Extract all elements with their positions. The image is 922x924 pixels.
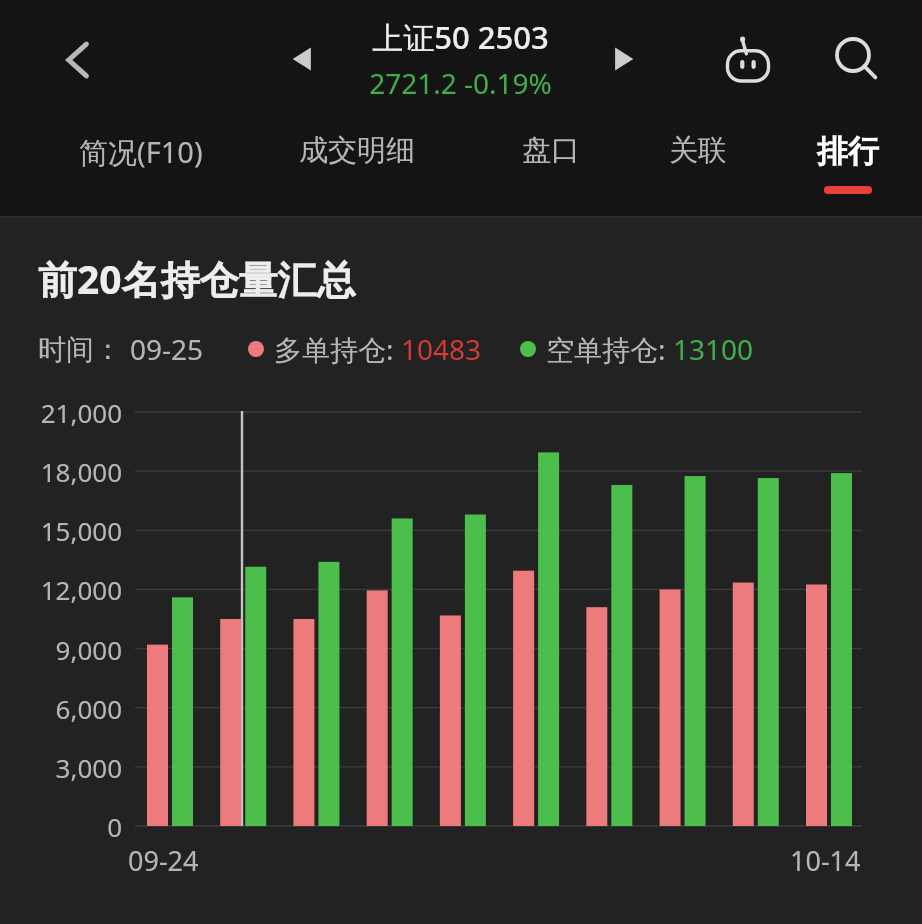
staticText: 盘口 <box>522 132 580 169</box>
staticText: 简况(F10) <box>79 132 203 172</box>
button[interactable]: Next contract <box>596 30 654 88</box>
staticText: 0 <box>0 809 122 844</box>
staticText: 09-25 <box>130 330 204 368</box>
staticText: 9,000 <box>0 632 122 667</box>
staticText: 时间： <box>38 332 122 367</box>
staticText: 关联 <box>669 132 727 169</box>
staticText: 13100 <box>673 330 754 368</box>
staticText: 21,000 <box>0 395 122 430</box>
staticText: 成交明细 <box>299 132 415 169</box>
button[interactable]: Previous contract <box>272 30 330 88</box>
staticText: 2721.2 -0.19% <box>369 64 552 102</box>
staticText: 12,000 <box>0 572 122 607</box>
staticText: 15,000 <box>0 513 122 548</box>
button[interactable]: 排行 <box>797 118 899 216</box>
staticText: 前20名持仓量汇总 <box>38 252 356 305</box>
button[interactable]: 关联 <box>647 118 749 216</box>
staticText: 空单持仓: <box>546 330 673 368</box>
button[interactable]: Back <box>42 24 114 96</box>
staticText: 10-14 <box>790 842 861 879</box>
staticText: 09-24 <box>128 842 199 879</box>
button[interactable]: Search <box>820 24 892 96</box>
button[interactable]: 盘口 <box>500 118 602 216</box>
staticText: 多单持仓: <box>274 330 401 368</box>
staticText: 排行 <box>817 132 879 171</box>
staticText: 10483 <box>401 330 482 368</box>
staticText: 上证50 2503 <box>372 16 549 58</box>
staticText: 3,000 <box>0 750 122 785</box>
staticText: 6,000 <box>0 691 122 726</box>
button[interactable]: 简况(F10) <box>40 118 242 216</box>
button[interactable]: AI assistant <box>712 24 784 96</box>
staticText: 18,000 <box>0 454 122 489</box>
button[interactable]: 成交明细 <box>274 118 440 216</box>
